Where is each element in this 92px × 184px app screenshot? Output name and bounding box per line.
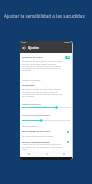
button[interactable]: Atrás — [22, 46, 72, 50]
staticText: Modo de respuesta — [22, 125, 63, 127]
staticText: Detección de caídas — [22, 56, 63, 59]
button[interactable] — [21, 130, 71, 138]
staticText: Umbral de aceleración — [22, 103, 63, 105]
staticText: Ajustes de sensibilidad — [22, 79, 63, 81]
staticText: Selecciona el grado de movimiento que se… — [22, 88, 63, 97]
button[interactable]: Atrás — [20, 151, 38, 157]
staticText: Envío automático de la alerta — [22, 130, 63, 133]
staticText: Sin confirmación previa del usuario. — [22, 135, 63, 138]
button[interactable]: Aplicaciones recientes — [55, 151, 72, 157]
staticText: 100% — [64, 41, 70, 44]
other: Atrás — [22, 46, 26, 50]
staticText: Antes de avisar se muestra una cuenta at… — [22, 143, 63, 150]
other: Ajustar nivel — [22, 106, 70, 109]
other: Ajustar nivel — [22, 119, 70, 122]
staticText: Solicitar confirmación previa — [22, 141, 63, 144]
staticText: Ajustes — [28, 46, 40, 50]
button[interactable] — [21, 55, 71, 73]
staticText: Sensibilidad — [22, 84, 63, 87]
staticText: 9:41 — [22, 41, 27, 44]
staticText: Ajustar la sensibilidad a las sacudidas — [4, 13, 85, 19]
button[interactable]: Inicio — [38, 151, 55, 157]
button[interactable]: Activar detección — [65, 56, 70, 59]
staticText: Duración mínima del movimiento — [22, 114, 63, 116]
button[interactable] — [21, 139, 71, 150]
staticText: Esta opción permite detectar los movimie… — [22, 60, 63, 71]
